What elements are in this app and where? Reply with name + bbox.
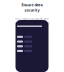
staticText: security [24, 7, 39, 13]
staticText: Your data is encrypted and [15, 17, 49, 20]
staticText: stored safely on this device [15, 21, 49, 25]
staticText: Ensure data [21, 2, 42, 7]
